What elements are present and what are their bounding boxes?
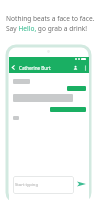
button[interactable]: More options <box>84 64 87 72</box>
staticText: Catherine Burt <box>19 65 51 71</box>
button[interactable]: Send <box>77 181 86 187</box>
button[interactable]: Back <box>9 63 17 72</box>
staticText: Nothing beats a face to face. <box>6 14 95 23</box>
staticText: Say Hello, go grab a drink! <box>6 24 88 33</box>
button[interactable]: Start typing <box>13 176 74 194</box>
staticText: Start typing <box>15 182 38 188</box>
button[interactable]: Add contact <box>73 65 79 71</box>
